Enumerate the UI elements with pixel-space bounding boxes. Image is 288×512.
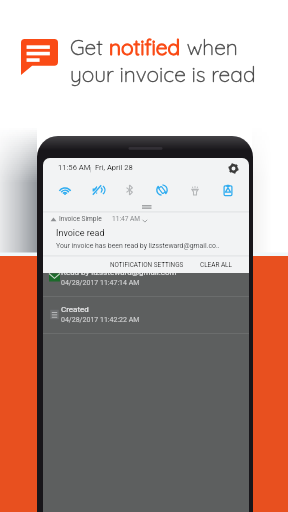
staticText: Fri, April 28 xyxy=(95,163,133,172)
staticText: Read by lizssteward@gmail.com xyxy=(61,268,177,277)
staticText: when xyxy=(181,34,238,60)
staticText: NOTIFICATION SETTINGS xyxy=(110,261,184,269)
button[interactable]: Settings xyxy=(228,163,239,174)
staticText: Created xyxy=(61,305,89,314)
staticText: when xyxy=(181,34,238,60)
button[interactable]: Created xyxy=(43,297,249,334)
staticText: Get xyxy=(70,34,109,60)
staticText: 11:56 AM xyxy=(58,163,91,172)
staticText: your invoice is read xyxy=(70,61,256,87)
staticText: 11:47 AM xyxy=(112,215,141,223)
staticText: CLEAR ALL xyxy=(200,261,232,269)
button[interactable]: NOTIFICATION SETTINGS xyxy=(105,257,189,272)
button[interactable]: Read by lizssteward@gmail.com xyxy=(43,260,249,297)
staticText: Invoice read xyxy=(56,228,105,239)
staticText: 04/28/2017 11:47:14 AM xyxy=(61,279,140,287)
staticText: notified xyxy=(109,34,181,60)
staticText: 04/28/2017 11:42:22 AM xyxy=(61,316,140,324)
staticText: Get xyxy=(70,34,109,60)
staticText: your invoice is read xyxy=(70,61,256,87)
staticText: Your invoice has been read by lizsstewar… xyxy=(56,242,220,250)
button[interactable]: CLEAR ALL xyxy=(195,257,237,272)
staticText: Invoice Simple xyxy=(59,215,102,223)
staticText: notified xyxy=(109,34,181,60)
